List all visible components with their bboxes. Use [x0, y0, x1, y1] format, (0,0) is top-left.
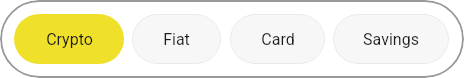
staticText: Card — [261, 30, 295, 49]
staticText: Savings — [363, 30, 419, 49]
staticText: Crypto — [46, 30, 93, 49]
button[interactable]: Card — [230, 14, 325, 64]
button[interactable]: Crypto — [14, 14, 124, 64]
button[interactable]: Fiat — [132, 14, 221, 64]
button[interactable]: Savings — [333, 14, 449, 64]
staticText: Fiat — [163, 30, 190, 49]
